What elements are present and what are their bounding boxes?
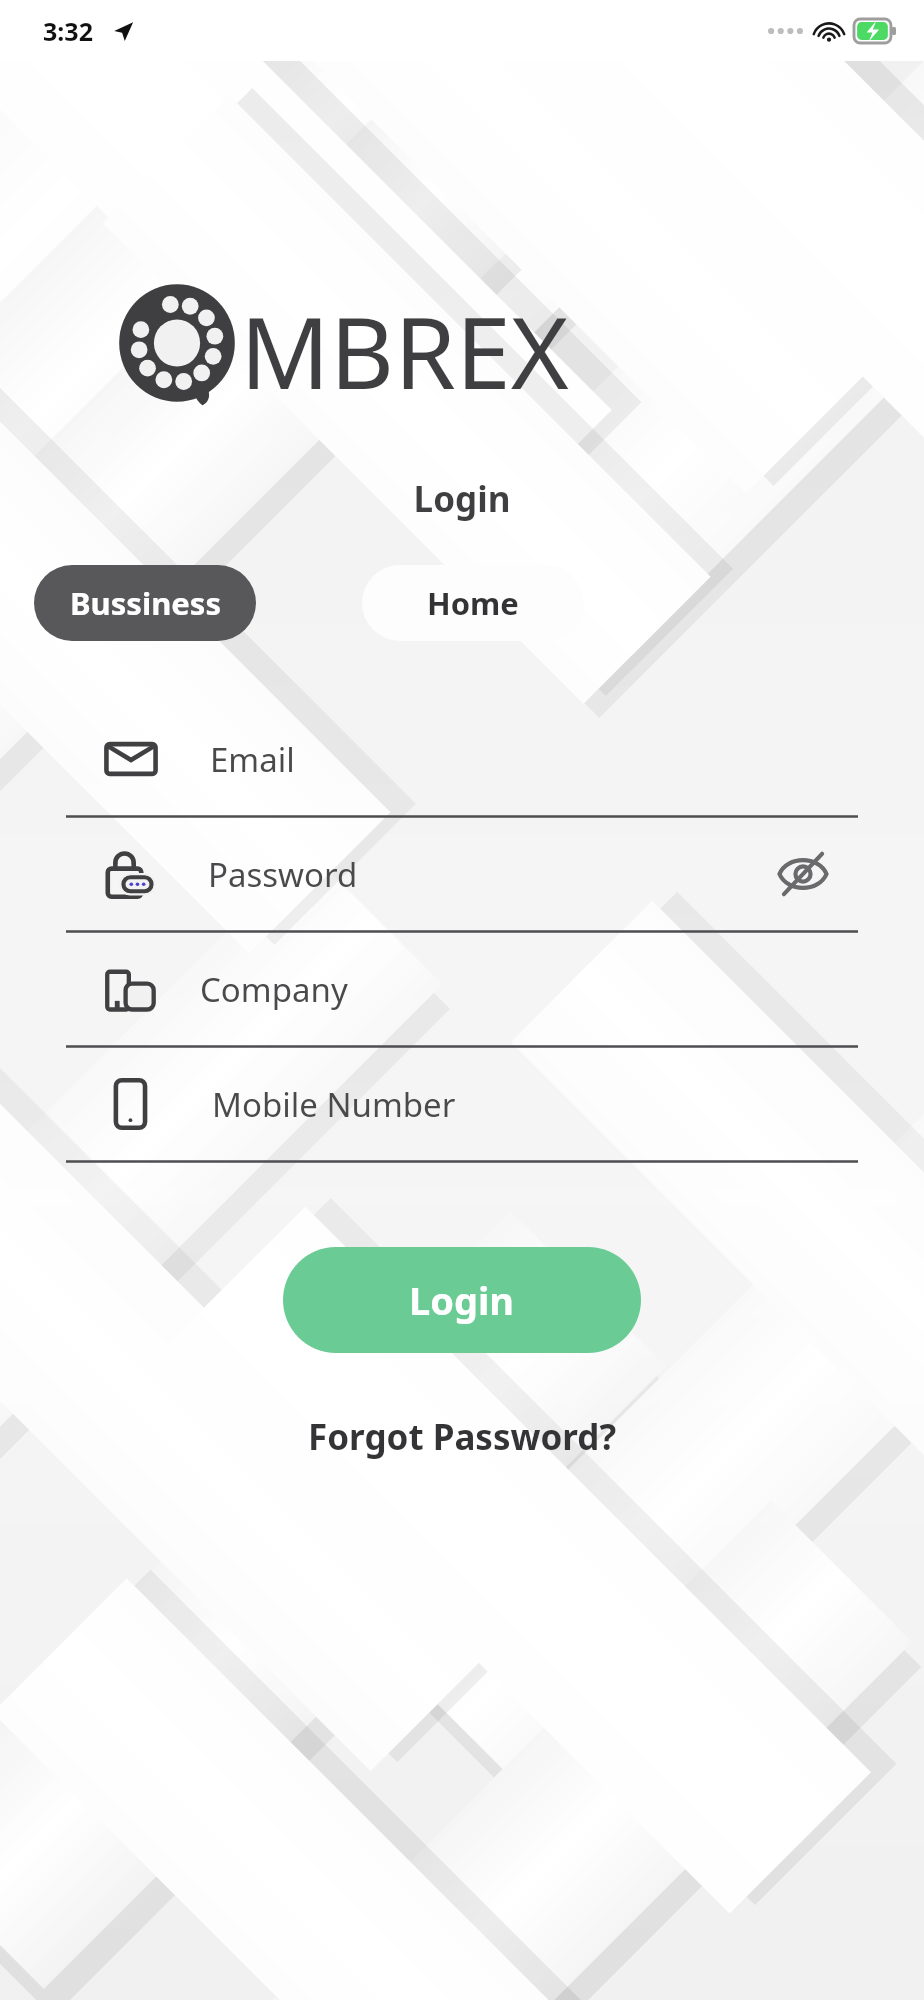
button[interactable]: Password — [66, 818, 858, 930]
staticText: MBREX — [240, 283, 569, 403]
button[interactable]: Login — [283, 1247, 641, 1353]
staticText: Company — [200, 967, 348, 1012]
staticText: 3:32 — [43, 14, 93, 48]
staticText: Login — [0, 475, 924, 523]
button[interactable]: Forgot Password? — [288, 1405, 637, 1469]
staticText: Password — [208, 852, 358, 897]
staticText: Mobile Number — [212, 1082, 456, 1127]
staticText: Forgot Password? — [308, 1413, 617, 1461]
staticText: Home — [427, 582, 519, 624]
button[interactable]: Home — [362, 565, 584, 641]
button[interactable]: Company — [66, 933, 858, 1045]
staticText: Email — [210, 737, 295, 782]
button[interactable]: Email — [66, 703, 858, 815]
button[interactable]: Mobile Number — [66, 1048, 858, 1160]
staticText: Login — [409, 1274, 515, 1326]
staticText: Bussiness — [70, 582, 221, 624]
button[interactable]: Show password — [772, 843, 834, 905]
button[interactable]: Bussiness — [34, 565, 256, 641]
